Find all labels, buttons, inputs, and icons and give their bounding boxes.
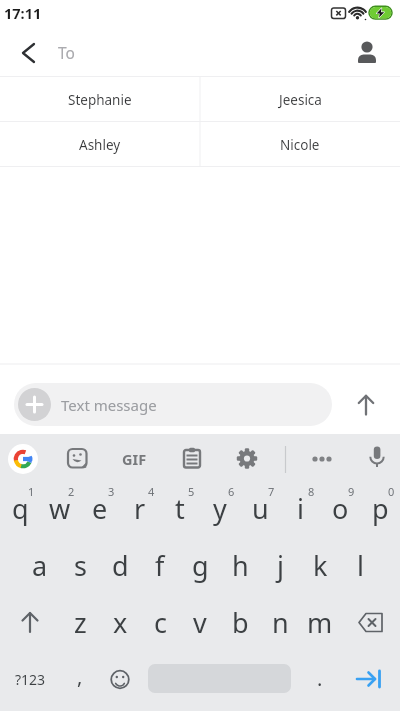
staticText: f — [155, 547, 165, 584]
staticText: d — [112, 547, 129, 584]
button[interactable]: Jeesica — [200, 77, 400, 122]
staticText: Stephanie — [68, 91, 132, 109]
staticText: 2 — [68, 484, 75, 499]
button[interactable]: d — [100, 537, 140, 594]
button[interactable]: Text message — [14, 383, 332, 426]
staticText: x — [113, 604, 128, 641]
button[interactable]: Stephanie — [0, 77, 200, 122]
staticText: , — [77, 663, 83, 690]
staticText: y — [213, 490, 227, 527]
staticText: To — [58, 42, 75, 63]
button[interactable]: q — [0, 480, 40, 537]
staticText: 1 — [28, 484, 35, 499]
staticText: 7 — [268, 484, 275, 499]
button[interactable]: v — [180, 594, 220, 651]
button[interactable]: t — [160, 480, 200, 537]
staticText: o — [332, 490, 349, 527]
staticText: Jeesica — [279, 91, 322, 109]
button[interactable] — [350, 36, 384, 68]
button[interactable]: GIF — [109, 439, 159, 479]
button[interactable]: Nicole — [200, 122, 400, 167]
staticText: n — [272, 604, 289, 641]
staticText: u — [252, 490, 269, 527]
staticText: k — [313, 547, 328, 584]
staticText: ?123 — [15, 670, 46, 689]
button[interactable]: p — [360, 480, 400, 537]
button[interactable]: . — [300, 650, 340, 707]
button[interactable] — [302, 439, 342, 479]
staticText: 0 — [388, 484, 395, 499]
button[interactable]: s — [60, 537, 100, 594]
staticText: . — [317, 665, 323, 692]
staticText: g — [192, 547, 209, 584]
button[interactable]: o — [320, 480, 360, 537]
button[interactable]: z — [60, 594, 100, 651]
button[interactable]: j — [260, 537, 300, 594]
staticText: 17:11 — [4, 3, 42, 23]
staticText: 9 — [348, 484, 355, 499]
staticText: 5 — [188, 484, 195, 499]
button[interactable]: k — [300, 537, 340, 594]
staticText: v — [193, 604, 207, 641]
staticText: s — [74, 547, 87, 584]
button[interactable] — [0, 594, 60, 651]
staticText: Text message — [61, 395, 157, 415]
staticText: 3 — [108, 484, 115, 499]
staticText: 4 — [148, 484, 155, 499]
staticText: c — [154, 604, 167, 641]
button[interactable]: c — [140, 594, 180, 651]
staticText: w — [49, 490, 71, 527]
button[interactable]: f — [140, 537, 180, 594]
button[interactable]: e — [80, 480, 120, 537]
button[interactable] — [340, 594, 400, 651]
button[interactable]: n — [260, 594, 300, 651]
button[interactable]: b — [220, 594, 260, 651]
staticText: j — [277, 547, 284, 584]
button[interactable]: ?123 — [0, 651, 60, 708]
staticText: e — [92, 490, 108, 527]
staticText: z — [74, 604, 87, 641]
staticText: i — [297, 490, 304, 527]
button[interactable]: , — [60, 651, 100, 701]
staticText: 6 — [228, 484, 235, 499]
staticText: p — [372, 490, 389, 527]
staticText: b — [232, 604, 249, 641]
staticText: q — [12, 490, 29, 527]
button[interactable] — [12, 38, 44, 68]
button[interactable] — [57, 439, 97, 479]
button[interactable] — [227, 439, 267, 479]
staticText: h — [232, 547, 249, 584]
staticText: Ashley — [79, 136, 121, 154]
button[interactable]: x — [100, 594, 140, 651]
staticText: l — [357, 547, 364, 584]
button[interactable]: y — [200, 480, 240, 537]
staticText: a — [32, 547, 48, 584]
button[interactable]: u — [240, 480, 280, 537]
staticText: m — [307, 604, 333, 641]
button[interactable]: w — [40, 480, 80, 537]
button[interactable] — [100, 651, 140, 708]
button[interactable]: i — [280, 480, 320, 537]
staticText: r — [134, 490, 146, 527]
button[interactable] — [357, 438, 397, 478]
button[interactable]: Ashley — [0, 122, 200, 167]
staticText: GIF — [122, 449, 147, 469]
button[interactable] — [340, 651, 400, 708]
button[interactable]: h — [220, 537, 260, 594]
button[interactable]: r — [120, 480, 160, 537]
button[interactable]: l — [340, 537, 380, 594]
button[interactable]: a — [20, 537, 60, 594]
button[interactable] — [348, 387, 384, 423]
button[interactable] — [172, 439, 212, 479]
button[interactable]: m — [300, 594, 340, 651]
staticText: Nicole — [280, 136, 320, 154]
staticText: 8 — [308, 484, 315, 499]
staticText: t — [175, 490, 185, 527]
button[interactable]: g — [180, 537, 220, 594]
button[interactable] — [8, 444, 38, 474]
